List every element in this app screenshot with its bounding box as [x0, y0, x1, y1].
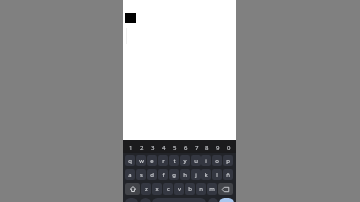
button[interactable]: m: [207, 183, 217, 195]
staticText: n: [199, 185, 203, 193]
button[interactable]: u: [191, 155, 201, 166]
button[interactable]: w: [136, 155, 146, 166]
button[interactable]: 5: [169, 140, 180, 153]
button[interactable]: c: [163, 183, 173, 195]
button[interactable]: 8: [201, 140, 212, 153]
button[interactable]: Shift: [125, 183, 140, 195]
button[interactable]: 2: [136, 140, 147, 153]
staticText: e: [150, 157, 154, 165]
staticText: t: [173, 157, 176, 165]
button[interactable]: x: [152, 183, 162, 195]
button[interactable]: e: [147, 155, 157, 166]
staticText: b: [188, 185, 192, 193]
button[interactable]: Enter: [219, 198, 234, 202]
button[interactable]: d: [147, 169, 157, 180]
staticText: z: [145, 185, 148, 193]
staticText: s: [140, 171, 143, 179]
button[interactable]: p: [223, 155, 233, 166]
staticText: 6: [184, 143, 188, 151]
button[interactable]: y: [180, 155, 190, 166]
staticText: 9: [216, 143, 220, 151]
staticText: i: [205, 157, 207, 165]
staticText: d: [150, 171, 154, 179]
staticText: 0: [227, 143, 231, 151]
staticText: l: [216, 171, 218, 179]
button[interactable]: z: [141, 183, 151, 195]
staticText: q: [128, 157, 132, 165]
staticText: f: [162, 171, 165, 179]
button[interactable]: h: [180, 169, 190, 180]
staticText: u: [194, 157, 198, 165]
button[interactable]: 9: [212, 140, 223, 153]
button[interactable]: Space: [152, 198, 206, 202]
staticText: 1: [129, 143, 133, 151]
button[interactable]: s: [136, 169, 146, 180]
button[interactable]: i: [201, 155, 211, 166]
button[interactable]: 6: [180, 140, 191, 153]
staticText: 4: [162, 143, 166, 151]
staticText: j: [195, 171, 197, 179]
button[interactable]: ñ: [223, 169, 233, 180]
staticText: h: [183, 171, 187, 179]
staticText: ñ: [226, 171, 230, 179]
staticText: r: [162, 157, 165, 165]
button[interactable]: t: [169, 155, 179, 166]
button[interactable]: g: [169, 169, 179, 180]
button[interactable]: r: [158, 155, 168, 166]
staticText: c: [167, 185, 170, 193]
staticText: x: [155, 185, 159, 193]
button[interactable]: v: [174, 183, 184, 195]
button[interactable]: f: [158, 169, 168, 180]
button[interactable]: o: [212, 155, 222, 166]
staticText: 3: [151, 143, 155, 151]
staticText: 8: [205, 143, 209, 151]
staticText: o: [215, 157, 219, 165]
button[interactable]: b: [185, 183, 195, 195]
button[interactable]: 3: [147, 140, 158, 153]
button[interactable]: a: [125, 169, 135, 180]
staticText: m: [209, 185, 215, 193]
staticText: g: [172, 171, 176, 179]
staticText: p: [226, 157, 230, 165]
button[interactable]: 4: [158, 140, 169, 153]
staticText: y: [183, 157, 187, 165]
staticText: 7: [195, 143, 199, 151]
staticText: 2: [140, 143, 144, 151]
staticText: k: [204, 171, 208, 179]
button[interactable]: 1: [125, 140, 136, 153]
button[interactable]: n: [196, 183, 206, 195]
staticText: a: [128, 171, 132, 179]
staticText: w: [139, 157, 144, 165]
button[interactable]: l: [212, 169, 222, 180]
button[interactable]: Comma: [140, 198, 151, 202]
button[interactable]: k: [201, 169, 211, 180]
button[interactable]: Period: [208, 198, 218, 202]
button[interactable]: j: [191, 169, 201, 180]
button[interactable]: Backspace: [218, 183, 233, 195]
button[interactable]: Symbols: [125, 198, 138, 202]
staticText: 5: [173, 143, 177, 151]
button[interactable]: q: [125, 155, 135, 166]
button[interactable]: 7: [191, 140, 202, 153]
staticText: v: [178, 185, 181, 193]
button[interactable]: 0: [223, 140, 234, 153]
